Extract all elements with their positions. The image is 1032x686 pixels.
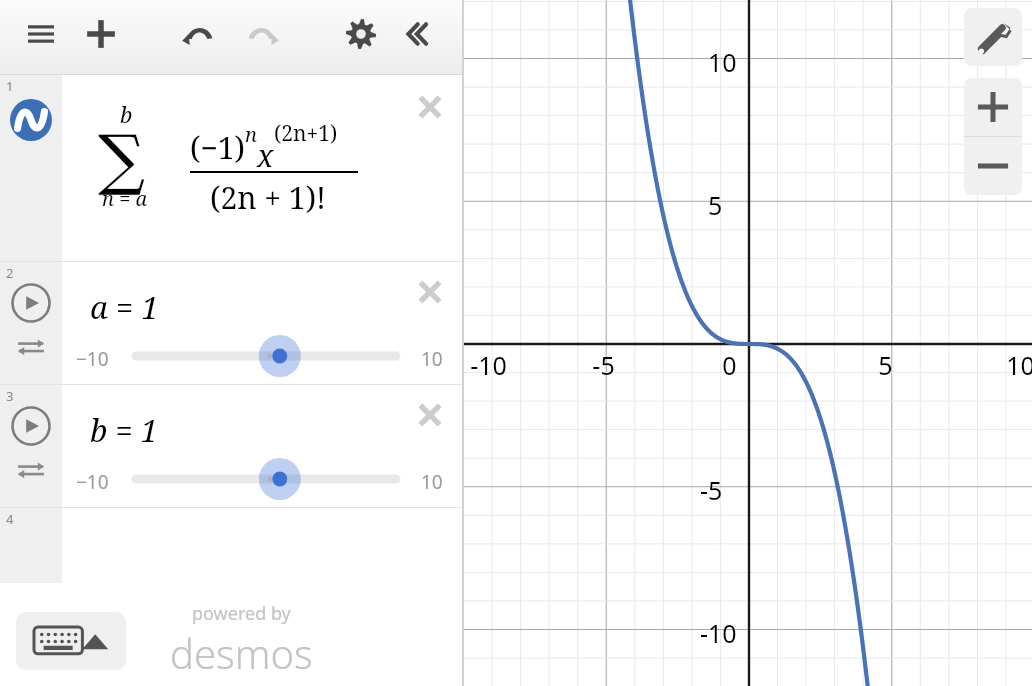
button[interactable]: Play animation <box>11 406 51 446</box>
button[interactable]: 4 <box>0 508 462 583</box>
button[interactable]: Delete expression <box>410 87 450 127</box>
button[interactable]: Graph settings <box>964 8 1022 66</box>
staticText: n = a <box>102 185 148 212</box>
staticText: 4 <box>6 510 14 528</box>
staticText: powered by <box>192 601 291 626</box>
button[interactable]: Toggle slider direction <box>14 330 48 364</box>
staticText: -10 <box>470 348 507 382</box>
button[interactable]: Zoom in <box>964 78 1022 136</box>
staticText: n <box>245 121 257 148</box>
staticText: 2 <box>6 264 14 282</box>
button[interactable]: Play animation <box>11 283 51 323</box>
staticText: -10 <box>700 616 737 650</box>
staticText: -5 <box>592 348 615 382</box>
button[interactable]: 1 <box>0 75 462 261</box>
staticText: x <box>257 135 274 176</box>
staticText: 10 <box>421 469 443 495</box>
staticText: -5 <box>700 473 723 507</box>
button[interactable]: Collapse <box>400 13 442 55</box>
staticText: 5 <box>708 188 723 222</box>
staticText: 10 <box>1006 348 1032 382</box>
button[interactable]: Show keyboard <box>16 612 126 670</box>
staticText: −10 <box>76 346 109 372</box>
staticText: 5 <box>878 348 893 382</box>
staticText: (−1) <box>190 127 245 168</box>
staticText: ∑ <box>98 121 146 198</box>
button[interactable]: Undo <box>178 13 220 55</box>
button[interactable]: Toggle slider direction <box>14 453 48 487</box>
staticText: a = 1 <box>90 286 159 328</box>
button[interactable]: Menu <box>20 13 62 55</box>
staticText: 10 <box>421 346 443 372</box>
button[interactable]: 2 <box>0 262 462 384</box>
staticText: (2n+1) <box>274 119 338 148</box>
staticText: 10 <box>708 45 737 79</box>
staticText: 0 <box>722 348 737 382</box>
staticText: −10 <box>76 469 109 495</box>
staticText: b = 1 <box>90 409 159 451</box>
staticText: 3 <box>6 387 14 405</box>
button[interactable]: 3 <box>0 385 462 507</box>
button[interactable]: Zoom out <box>964 137 1022 195</box>
button[interactable]: a slider <box>130 334 408 378</box>
staticText: b <box>120 99 133 129</box>
staticText: desmos <box>170 626 313 680</box>
button[interactable]: Settings <box>340 13 382 55</box>
staticText: (2n + 1)! <box>210 177 326 218</box>
button[interactable]: b slider <box>130 457 408 501</box>
button[interactable]: Delete expression <box>410 272 450 312</box>
button[interactable]: Add expression <box>80 13 122 55</box>
button[interactable]: Redo <box>241 13 283 55</box>
staticText: 1 <box>6 77 14 95</box>
button[interactable]: Delete expression <box>410 395 450 435</box>
